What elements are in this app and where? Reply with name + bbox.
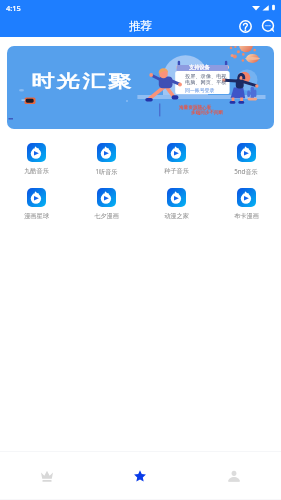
staticText: 多端同步不间断 [191, 110, 224, 116]
button[interactable]: 漫画星球 [5, 188, 67, 220]
staticText: 同一账号登录 [185, 87, 215, 93]
staticText: 海量资源随心看 [179, 105, 212, 111]
button[interactable]: Help [236, 17, 255, 36]
button[interactable]: 时光汇聚 [7, 46, 274, 129]
staticText: 时光汇聚 [31, 71, 134, 92]
button[interactable]: Profile [187, 452, 281, 499]
staticText: 九酷音乐 [24, 167, 49, 175]
staticText: 电脑、网页、平板 [185, 79, 227, 86]
staticText: 七夕漫画 [94, 212, 119, 220]
button[interactable]: 布卡漫画 [215, 188, 277, 220]
staticText: 5nd音乐 [234, 167, 258, 175]
staticText: 动漫之家 [164, 212, 189, 220]
button[interactable]: Ranking [0, 452, 93, 499]
staticText: 漫画星球 [24, 212, 49, 220]
staticText: 推荐 [129, 19, 152, 33]
staticText: 1听音乐 [95, 167, 118, 175]
staticText: 布卡漫画 [234, 212, 259, 220]
button[interactable]: Messages [259, 17, 278, 36]
button[interactable]: 种子音乐 [145, 143, 207, 175]
button[interactable]: 九酷音乐 [5, 143, 67, 175]
button[interactable]: 5nd音乐 [215, 143, 277, 175]
staticText: 投屏、录像、电视 [185, 73, 227, 80]
staticText: 支持设备 [189, 64, 210, 71]
staticText: 种子音乐 [164, 167, 189, 175]
staticText: 4:15 [6, 3, 21, 13]
button[interactable]: 七夕漫画 [75, 188, 137, 220]
button[interactable]: 动漫之家 [145, 188, 207, 220]
button[interactable]: 1听音乐 [75, 143, 137, 175]
button[interactable]: Recommend [93, 452, 187, 499]
